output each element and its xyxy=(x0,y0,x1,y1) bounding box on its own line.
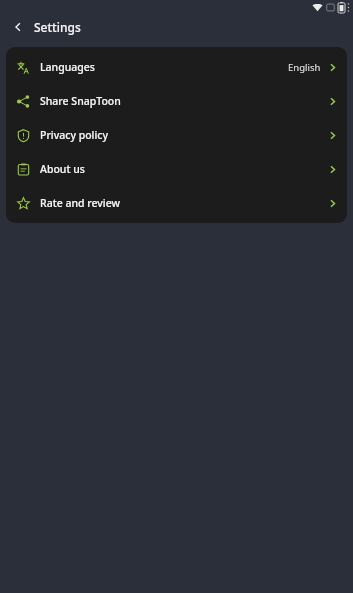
button[interactable]: Rate and review xyxy=(6,186,347,220)
other: Privacy policy xyxy=(17,129,30,142)
button[interactable]: Privacy policy xyxy=(6,118,347,152)
other: About us xyxy=(17,163,30,176)
staticText: English xyxy=(288,61,321,74)
staticText: Settings xyxy=(34,19,81,35)
staticText: Share SnapToon xyxy=(40,94,121,108)
staticText: Rate and review xyxy=(40,196,120,210)
other: Rate and review xyxy=(17,197,30,210)
button[interactable]: About us xyxy=(6,152,347,186)
button[interactable]: Languages xyxy=(6,50,347,84)
staticText: Languages xyxy=(40,60,95,74)
staticText: About us xyxy=(40,162,85,176)
other: Share xyxy=(17,95,30,108)
staticText: Privacy policy xyxy=(40,128,108,142)
other: Languages xyxy=(17,61,30,74)
button[interactable]: Back xyxy=(8,17,28,37)
button[interactable]: Share xyxy=(6,84,347,118)
